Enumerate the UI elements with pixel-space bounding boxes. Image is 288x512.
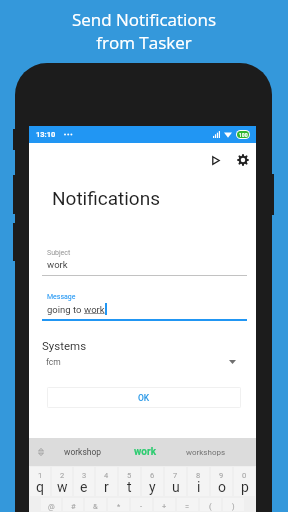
button[interactable]: 1 (30, 467, 50, 496)
staticText: 0 (242, 471, 247, 480)
button[interactable]: ) (223, 498, 244, 511)
button[interactable]: work (115, 438, 175, 466)
staticText: - (140, 502, 143, 511)
button[interactable]: workshop (53, 438, 113, 466)
button[interactable]: 9 (211, 467, 232, 496)
staticText: e (80, 479, 88, 495)
staticText: fcm (46, 357, 61, 367)
staticText: y (149, 479, 156, 495)
button[interactable]: ( (200, 498, 221, 511)
button[interactable]: 4 (96, 467, 117, 496)
button[interactable]: 0 (234, 467, 255, 496)
staticText: 7 (173, 471, 178, 480)
staticText: t (127, 479, 132, 495)
staticText: 8 (196, 471, 201, 480)
button[interactable]: 3 (74, 467, 94, 496)
staticText: @ (48, 502, 55, 511)
staticText: i (197, 479, 201, 495)
staticText: ( (209, 502, 212, 511)
staticText: 3 (82, 471, 87, 480)
staticText: 2 (60, 471, 65, 480)
staticText: q (36, 479, 44, 495)
staticText: o (218, 479, 226, 495)
button[interactable]: OK (47, 387, 241, 408)
button[interactable]: Systems (42, 336, 248, 370)
staticText: 100 (239, 132, 248, 138)
staticText: u (172, 479, 180, 495)
button[interactable]: 8 (188, 467, 209, 496)
staticText: workshop (64, 447, 102, 457)
staticText: work (84, 304, 105, 315)
staticText: 6 (150, 471, 155, 480)
button[interactable]: workshops (175, 438, 237, 466)
button[interactable]: * (108, 498, 129, 511)
staticText: ) (232, 502, 235, 511)
button[interactable]: - (131, 498, 152, 511)
staticText: workshops (186, 448, 226, 457)
staticText: + (162, 502, 167, 511)
staticText: going to (47, 304, 84, 315)
button[interactable]: 5 (119, 467, 140, 496)
staticText: 9 (219, 471, 224, 480)
staticText: # (71, 502, 76, 511)
button[interactable]: # (63, 498, 83, 511)
staticText: 5 (127, 471, 132, 480)
staticText: work (134, 446, 156, 458)
staticText: 13:10 (36, 130, 56, 139)
button[interactable]: 2 (52, 467, 72, 496)
staticText: p (241, 479, 249, 495)
staticText: Message (47, 293, 76, 301)
staticText: Send Notifications from Tasker (0, 8, 288, 54)
button[interactable]: Settings (231, 148, 255, 172)
staticText: * (117, 502, 121, 511)
staticText: Subject (47, 249, 71, 257)
button[interactable]: + (154, 498, 175, 511)
staticText: w (57, 479, 68, 495)
button[interactable]: Expand suggestions (29, 438, 53, 466)
button[interactable]: @ (41, 498, 61, 511)
staticText: Notifications (52, 187, 161, 209)
staticText: & (93, 502, 98, 511)
staticText: work (47, 259, 68, 270)
button[interactable]: Run (204, 148, 228, 172)
staticText: 1 (38, 471, 43, 480)
staticText: Systems (42, 339, 87, 352)
staticText: r (104, 479, 109, 495)
button[interactable]: 7 (165, 467, 186, 496)
button[interactable]: & (85, 498, 106, 511)
staticText: = (185, 502, 190, 511)
button[interactable]: 6 (142, 467, 163, 496)
staticText: OK (138, 393, 150, 403)
staticText: 4 (104, 471, 109, 480)
button[interactable]: = (177, 498, 198, 511)
